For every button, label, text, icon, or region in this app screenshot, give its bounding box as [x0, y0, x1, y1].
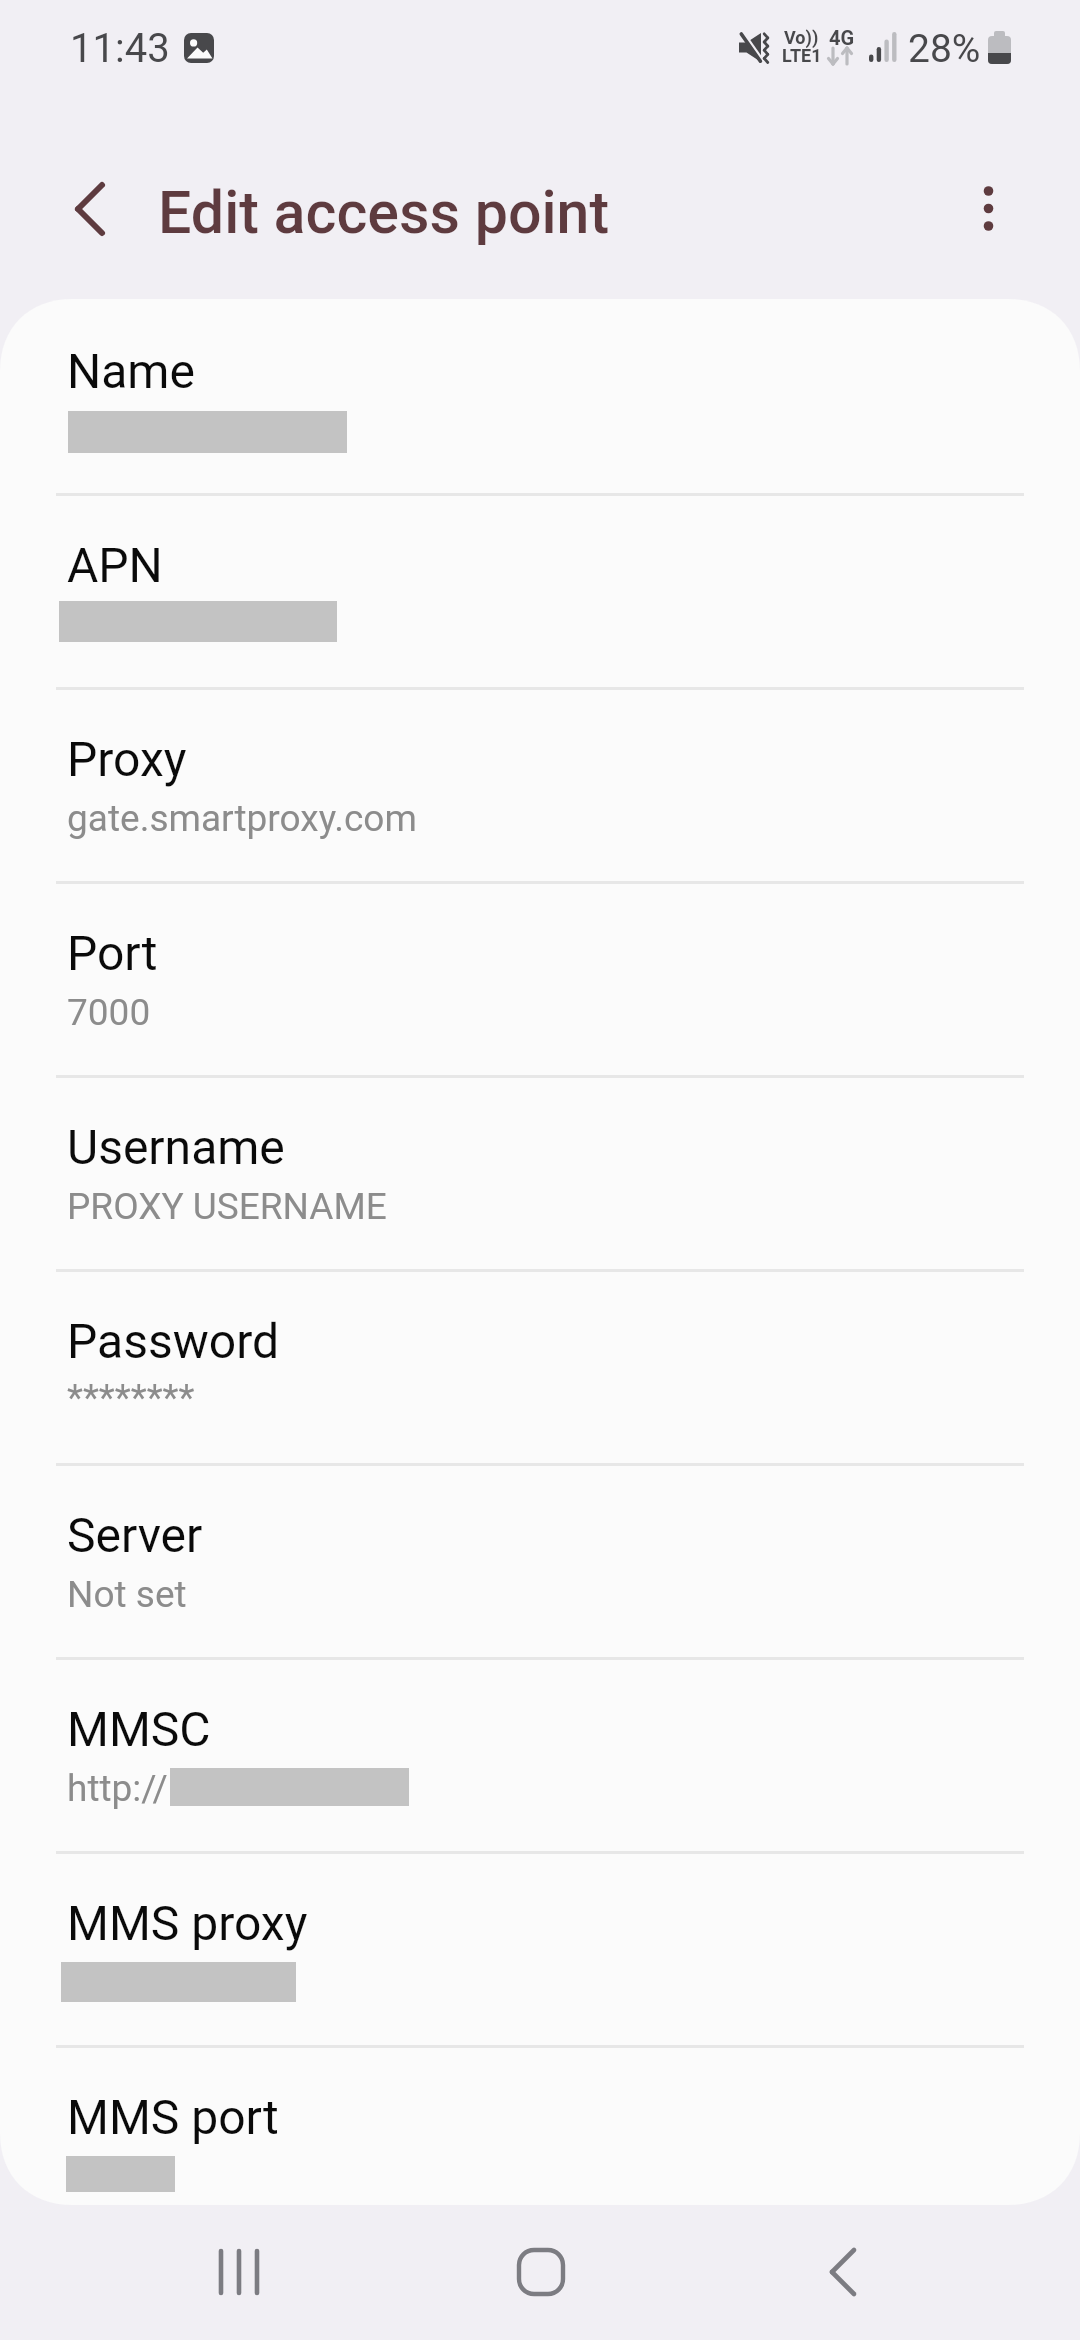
button[interactable]: Recent apps — [180, 2220, 298, 2324]
staticText: APN — [67, 537, 163, 593]
button[interactable]: Username — [0, 1075, 1080, 1269]
button[interactable]: Navigate up — [33, 166, 119, 252]
button[interactable]: MMS port — [0, 2045, 1080, 2204]
staticText: 28% — [908, 26, 981, 72]
staticText: Vo)) — [784, 27, 819, 48]
staticText: PROXY USERNAME — [67, 1185, 387, 1228]
staticText: gate.smartproxy.com — [67, 797, 417, 840]
button[interactable]: Server — [0, 1463, 1080, 1657]
button[interactable]: More options — [946, 165, 1032, 251]
staticText: Name — [67, 343, 195, 399]
staticText: MMS port — [67, 2089, 279, 2145]
button[interactable]: Password — [0, 1269, 1080, 1463]
staticText: ******** — [67, 1376, 195, 1419]
button[interactable]: Name — [0, 299, 1080, 493]
staticText: Proxy — [67, 731, 187, 787]
staticText: LTE1 — [782, 45, 822, 66]
staticText: 11:43 — [70, 25, 170, 72]
staticText: 4G — [829, 26, 855, 49]
button[interactable]: Home — [482, 2220, 600, 2324]
button[interactable]: Back — [784, 2220, 902, 2324]
button[interactable]: MMSC — [0, 1657, 1080, 1851]
staticText: Password — [67, 1313, 280, 1369]
staticText: http:// — [67, 1767, 168, 1810]
button[interactable]: Port — [0, 881, 1080, 1075]
staticText: Username — [67, 1119, 285, 1175]
button[interactable]: Proxy — [0, 687, 1080, 881]
button[interactable]: MMS proxy — [0, 1851, 1080, 2045]
button[interactable]: APN — [0, 493, 1080, 687]
staticText: Port — [67, 925, 158, 981]
staticText: MMSC — [67, 1701, 211, 1757]
staticText: Edit access point — [158, 178, 610, 247]
staticText: 7000 — [67, 991, 151, 1034]
staticText: MMS proxy — [67, 1895, 308, 1951]
staticText: Not set — [67, 1573, 187, 1616]
staticText: Server — [67, 1507, 203, 1563]
